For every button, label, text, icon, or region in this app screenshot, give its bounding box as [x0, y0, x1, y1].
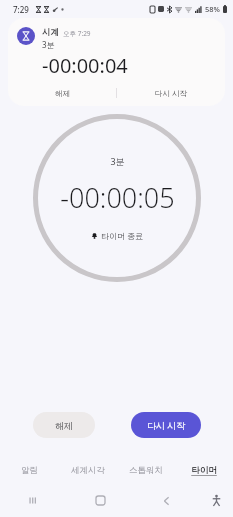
staticText: 시계 [42, 27, 59, 38]
button[interactable]: 해제 [33, 412, 95, 438]
button[interactable]: 타이머 [175, 456, 233, 484]
staticText: -00:00:04 [42, 52, 128, 79]
button[interactable]: 시계 [8, 18, 225, 106]
staticText: 58% [205, 4, 220, 14]
staticText: 해제 [55, 420, 73, 431]
staticText: 해제 [55, 89, 70, 98]
staticText: 3분 [42, 39, 55, 50]
button[interactable]: Back [133, 484, 199, 517]
button[interactable]: Accessibility [199, 484, 233, 517]
staticText: 타이머 종료 [101, 230, 144, 241]
button[interactable]: Home [67, 484, 133, 517]
button[interactable]: 세계시각 [59, 456, 117, 484]
staticText: -00:00:05 [60, 179, 175, 216]
staticText: 타이머 [191, 465, 217, 476]
button[interactable]: 알림 [0, 456, 59, 484]
button[interactable]: 다시 시작 [117, 83, 225, 103]
button[interactable]: 스톱워치 [117, 456, 175, 484]
staticText: 스톱워치 [129, 465, 163, 476]
button[interactable]: 해제 [8, 83, 116, 103]
staticText: 다시 시작 [155, 88, 187, 98]
staticText: 오후 7:29 [63, 29, 91, 38]
staticText: 알림 [21, 465, 38, 476]
button[interactable]: 다시 시작 [131, 412, 201, 438]
staticText: 3분 [110, 155, 125, 167]
staticText: 다시 시작 [147, 419, 186, 431]
button[interactable]: Recent apps [0, 484, 67, 517]
staticText: 세계시각 [71, 465, 105, 476]
staticText: 7:29 [13, 4, 29, 15]
